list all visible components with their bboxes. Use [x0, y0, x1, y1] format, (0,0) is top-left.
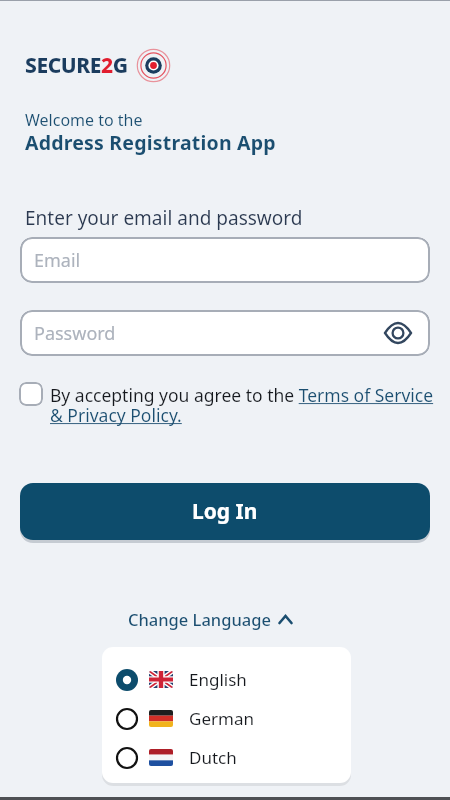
- button[interactable]: English: [102, 660, 351, 699]
- staticText: Log In: [192, 497, 258, 526]
- button[interactable]: By accepting you agree to the Terms of S…: [50, 383, 434, 407]
- staticText: Welcome to the: [25, 109, 143, 131]
- button[interactable]: [19, 382, 43, 406]
- button[interactable]: Change Language: [128, 608, 292, 630]
- button[interactable]: Email: [20, 237, 430, 283]
- staticText: Change Language: [128, 608, 271, 630]
- staticText: German: [189, 707, 254, 730]
- button[interactable]: [385, 322, 411, 344]
- staticText: SECURE2G: [25, 51, 128, 80]
- button[interactable]: Password: [20, 310, 430, 356]
- staticText: Enter your email and password: [25, 205, 303, 231]
- staticText: Dutch: [189, 746, 237, 769]
- staticText: Email: [34, 248, 81, 273]
- staticText: Password: [34, 321, 116, 346]
- button[interactable]: & Privacy Policy.: [50, 403, 182, 427]
- staticText: English: [189, 668, 247, 691]
- button[interactable]: German: [102, 699, 351, 738]
- button[interactable]: Log In: [20, 483, 430, 540]
- button[interactable]: Dutch: [102, 738, 351, 777]
- staticText: Address Registration App: [25, 129, 276, 156]
